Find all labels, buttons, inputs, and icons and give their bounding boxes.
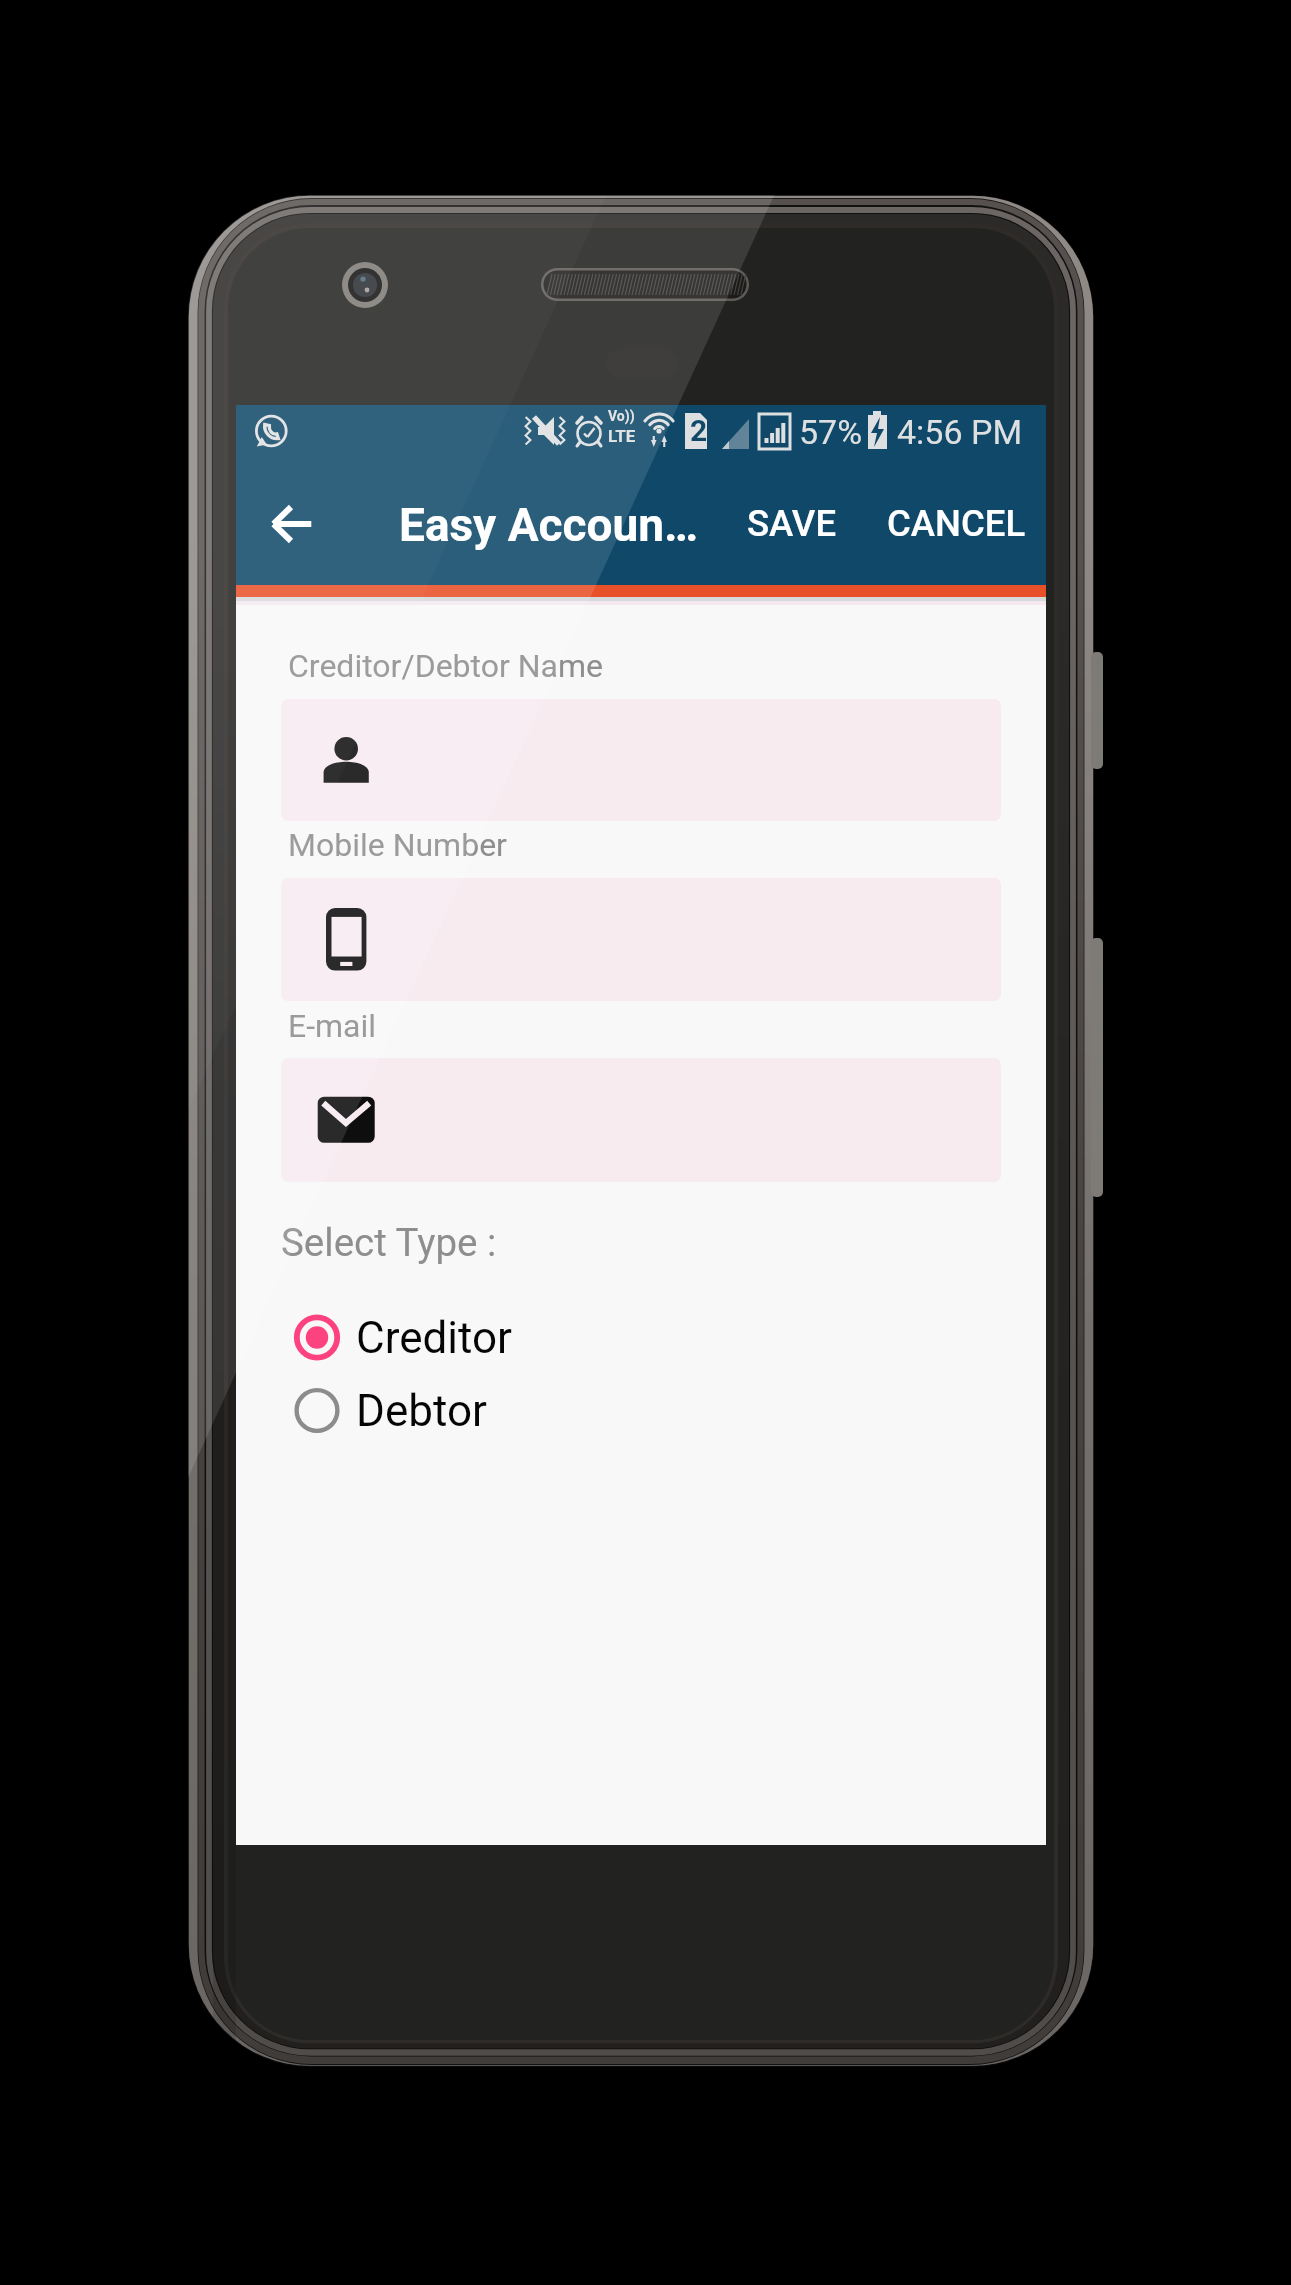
staticText: 57% (799, 412, 863, 452)
staticText: Creditor (356, 1312, 512, 1364)
button[interactable] (281, 878, 1001, 1001)
button[interactable]: Debtor (289, 1374, 487, 1447)
button[interactable]: Back (252, 494, 332, 554)
staticText: Select Type : (281, 1220, 497, 1265)
staticText: SAVE (747, 502, 836, 545)
button[interactable] (281, 1058, 1001, 1182)
staticText: Creditor/Debtor Name (288, 647, 604, 685)
staticText: LTE (608, 426, 636, 446)
staticText: Mobile Number (288, 826, 507, 864)
staticText: Debtor (356, 1385, 487, 1437)
button[interactable]: Creditor (289, 1301, 512, 1374)
staticText: CANCEL (887, 502, 1026, 545)
staticText: Vo)) (608, 408, 635, 424)
button[interactable] (281, 699, 1001, 821)
button[interactable]: CANCEL (887, 502, 1026, 545)
staticText: 4:56 PM (897, 412, 1023, 452)
staticText: Easy Accoun… (399, 498, 699, 552)
button[interactable]: SAVE (747, 502, 836, 545)
staticText: 2 (690, 413, 708, 448)
staticText: E-mail (288, 1007, 377, 1045)
